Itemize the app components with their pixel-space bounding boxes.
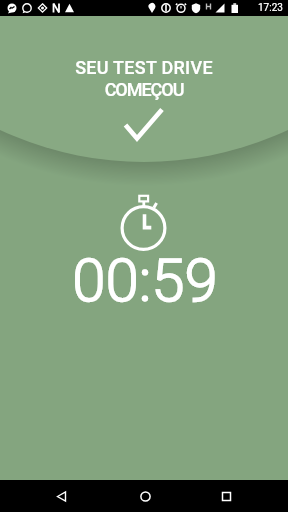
staticText: SEU TEST DRIVE bbox=[0, 57, 288, 78]
staticText: 00:59 bbox=[1, 245, 288, 315]
staticText: 17:23 bbox=[258, 2, 283, 14]
staticText: COMEÇOU bbox=[0, 79, 288, 100]
button[interactable] bbox=[122, 480, 166, 512]
staticText: 00:59 bbox=[1, 245, 288, 315]
button[interactable] bbox=[40, 480, 84, 512]
button[interactable] bbox=[204, 480, 248, 512]
